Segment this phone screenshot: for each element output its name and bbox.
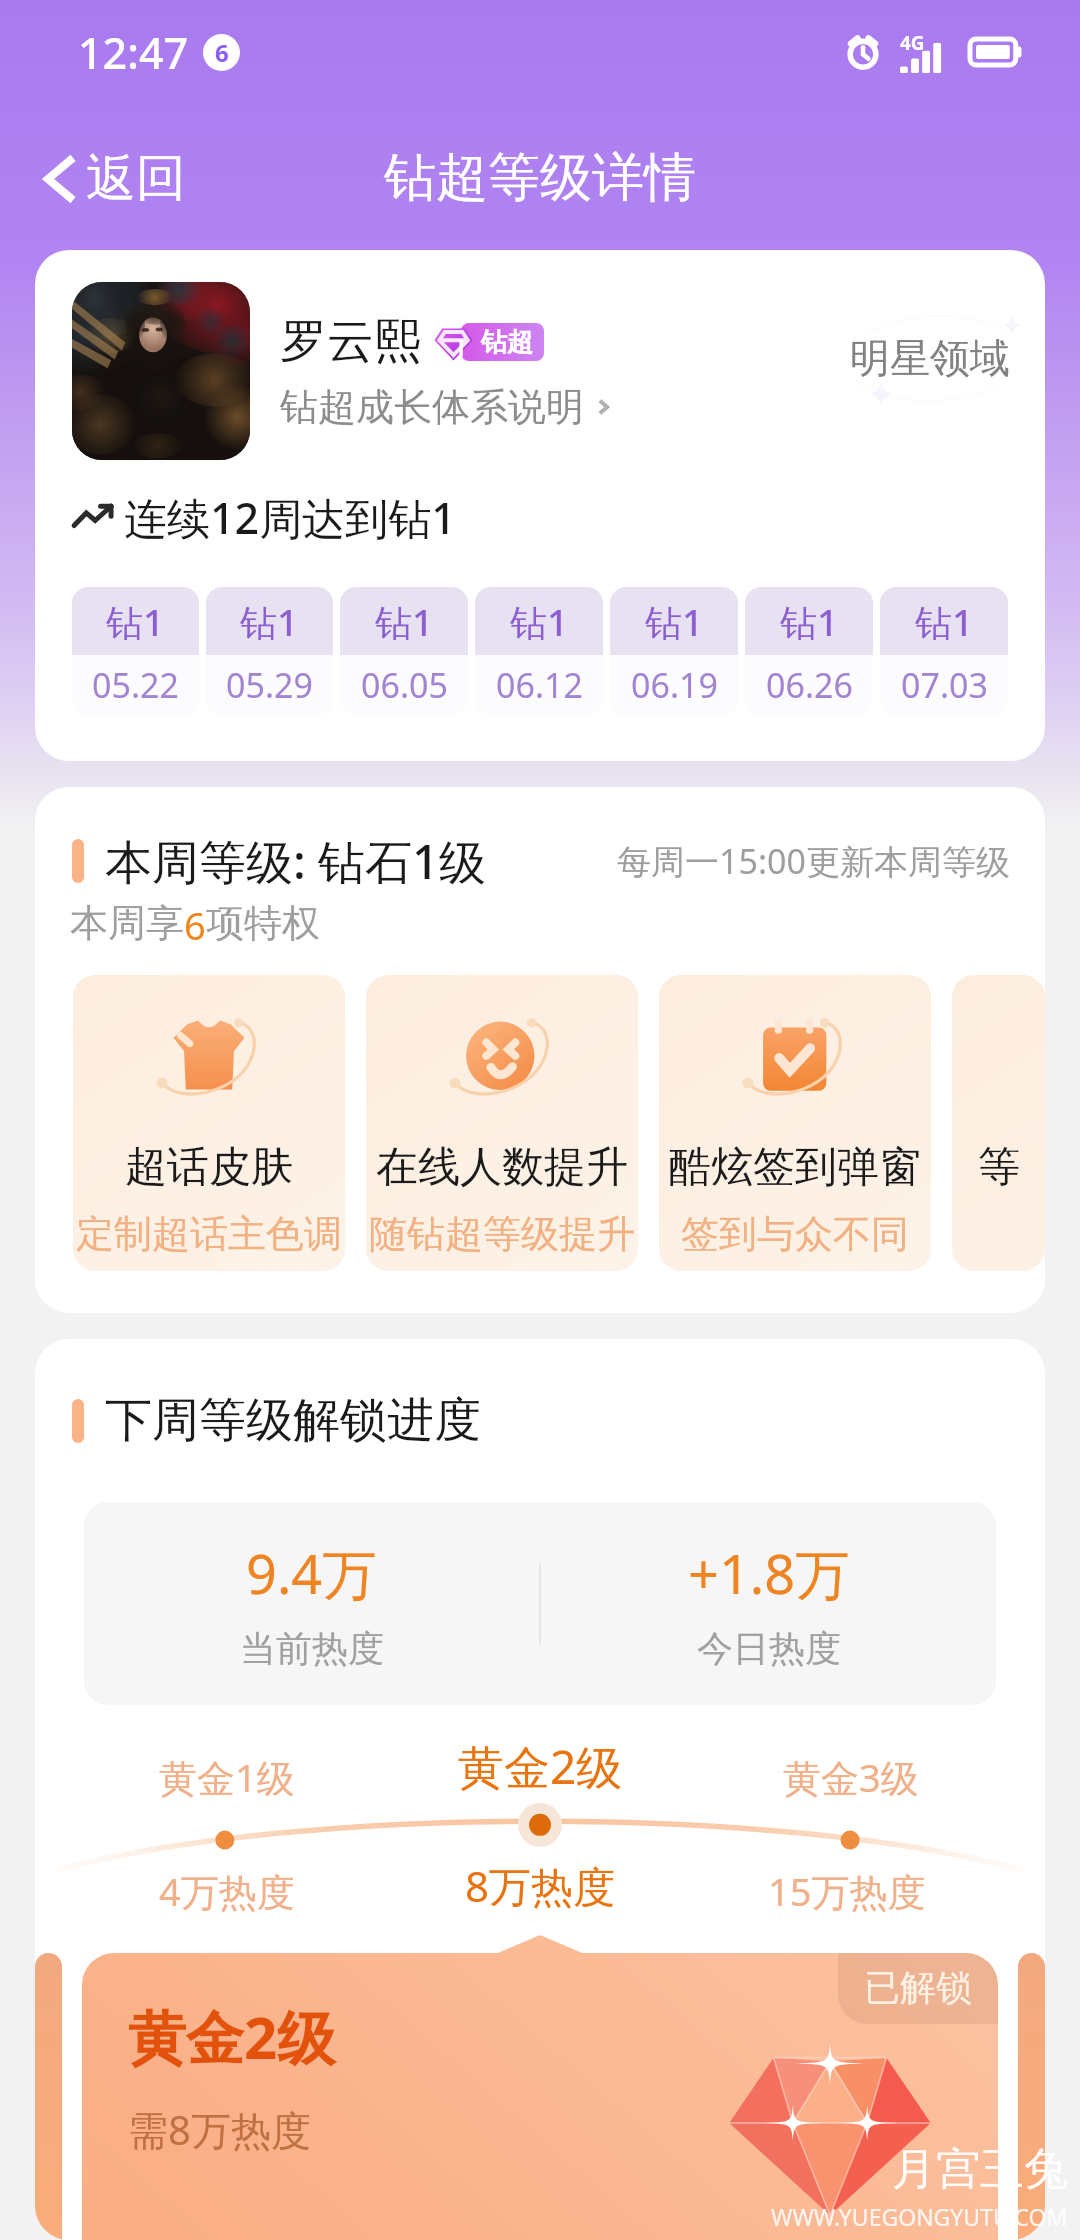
button[interactable]: 钻1 xyxy=(206,587,333,715)
staticText: 下周等级解锁进度 xyxy=(105,1391,481,1450)
staticText: 9.4万 xyxy=(246,1536,377,1610)
staticText: 签到与众不同 xyxy=(681,1210,909,1258)
staticText: 本周等级: 钻石1级 xyxy=(105,829,486,893)
staticText: 07.03 xyxy=(901,662,988,708)
staticText: 05.22 xyxy=(92,662,179,708)
staticText: 黄金1级 xyxy=(159,1751,295,1803)
staticText: 6 xyxy=(215,36,229,69)
staticText: 返回 xyxy=(86,147,186,210)
staticText: 项特权 xyxy=(206,899,320,947)
staticText: 超话皮肤 xyxy=(125,1141,293,1194)
staticText: 钻1 xyxy=(375,596,434,647)
button[interactable]: 钻1 xyxy=(880,587,1008,715)
staticText: 钻1 xyxy=(780,596,839,647)
button[interactable]: 在线人数提升 xyxy=(366,975,638,1271)
button[interactable]: 等 xyxy=(952,975,1045,1271)
staticText: 06.19 xyxy=(631,662,718,708)
staticText: 罗云熙 xyxy=(280,312,421,371)
staticText: 4G xyxy=(900,30,925,56)
button[interactable]: 钻超成长体系说明 xyxy=(280,383,616,431)
staticText: 黄金2级 xyxy=(128,1997,336,2076)
staticText: 钻超成长体系说明 xyxy=(280,383,584,431)
staticText: 钻1 xyxy=(510,596,569,647)
staticText: 钻超等级详情 xyxy=(384,145,696,211)
staticText: 05.29 xyxy=(226,662,313,708)
staticText: WWW.YUEGONGYUTU.COM xyxy=(771,2201,1068,2232)
other: Back xyxy=(34,154,84,204)
staticText: 钻1 xyxy=(240,596,299,647)
staticText: 月宫玉兔 xyxy=(892,2142,1068,2197)
staticText: 钻1 xyxy=(645,596,704,647)
staticText: 06.26 xyxy=(766,662,853,708)
staticText: 连续12周达到钻1 xyxy=(124,488,456,547)
staticText: 本周享 xyxy=(70,899,184,947)
staticText: 黄金2级 xyxy=(458,1735,623,1798)
button[interactable]: 钻1 xyxy=(72,587,199,715)
button[interactable]: 钻1 xyxy=(475,587,603,715)
staticText: 黄金3级 xyxy=(783,1751,919,1803)
button[interactable]: 黄金2级 xyxy=(82,1953,998,2240)
staticText: 每周一15:00更新本周等级 xyxy=(617,838,1010,884)
staticText: 已解锁 xyxy=(864,1965,972,2010)
button[interactable]: 酷炫签到弹窗 xyxy=(659,975,931,1271)
staticText: 酷炫签到弹窗 xyxy=(669,1141,921,1194)
staticText: 15万热度 xyxy=(768,1865,926,1917)
button[interactable]: 超话皮肤 xyxy=(73,975,345,1271)
staticText: 12:47 xyxy=(78,23,189,82)
button[interactable]: 钻1 xyxy=(610,587,738,715)
button[interactable]: Back xyxy=(0,135,210,222)
staticText: 在线人数提升 xyxy=(376,1141,628,1194)
staticText: 等 xyxy=(978,1141,1020,1194)
staticText: 4万热度 xyxy=(159,1865,295,1917)
button[interactable]: 钻1 xyxy=(340,587,468,715)
staticText: 06.05 xyxy=(361,662,448,708)
staticText: 8万热度 xyxy=(465,1857,616,1914)
staticText: 6 xyxy=(184,899,206,951)
staticText: 06.12 xyxy=(496,662,583,708)
button[interactable]: 钻1 xyxy=(745,587,873,715)
staticText: 今日热度 xyxy=(697,1626,841,1671)
staticText: 定制超话主色调 xyxy=(76,1210,342,1258)
staticText: 钻1 xyxy=(106,596,165,647)
staticText: 需8万热度 xyxy=(128,2102,311,2157)
staticText: 钻1 xyxy=(915,596,974,647)
staticText: +1.8万 xyxy=(688,1536,850,1610)
staticText: 当前热度 xyxy=(240,1626,384,1671)
staticText: 明星领域 xyxy=(850,333,1010,383)
staticText: 随钻超等级提升 xyxy=(369,1210,635,1258)
staticText: 钻超 xyxy=(481,326,533,359)
